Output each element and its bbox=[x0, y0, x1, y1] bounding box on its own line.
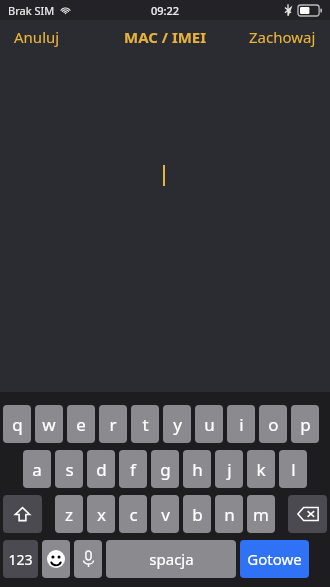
button[interactable]: z bbox=[55, 495, 83, 533]
button[interactable]: g bbox=[151, 450, 179, 488]
button[interactable]: f bbox=[119, 450, 147, 488]
button[interactable]: Anuluj bbox=[10, 24, 64, 50]
staticText: u bbox=[204, 413, 215, 436]
staticText: t bbox=[142, 413, 149, 436]
staticText: d bbox=[96, 458, 107, 481]
button[interactable]: k bbox=[247, 450, 275, 488]
staticText: s bbox=[65, 458, 74, 481]
staticText: e bbox=[76, 413, 86, 436]
staticText: r bbox=[109, 413, 117, 436]
button[interactable]: a bbox=[23, 450, 51, 488]
button[interactable]: i bbox=[227, 405, 255, 443]
button[interactable]: u bbox=[195, 405, 223, 443]
staticText: h bbox=[192, 458, 203, 481]
button[interactable]: Backspace bbox=[288, 495, 327, 533]
button[interactable]: 123 bbox=[3, 540, 38, 578]
button[interactable]: v bbox=[151, 495, 179, 533]
staticText: n bbox=[224, 503, 235, 526]
staticText: i bbox=[239, 413, 244, 436]
button[interactable]: s bbox=[55, 450, 83, 488]
staticText: w bbox=[42, 413, 56, 436]
staticText: Brak SIM bbox=[8, 3, 55, 18]
staticText: Anuluj bbox=[14, 27, 60, 47]
button[interactable]: h bbox=[183, 450, 211, 488]
button[interactable]: spacja bbox=[106, 540, 236, 578]
staticText: z bbox=[65, 503, 73, 526]
button[interactable]: Zachowaj bbox=[245, 24, 320, 50]
staticText: j bbox=[227, 458, 232, 481]
staticText: p bbox=[300, 413, 311, 436]
button[interactable]: e bbox=[67, 405, 95, 443]
button[interactable]: p bbox=[291, 405, 319, 443]
button[interactable]: x bbox=[87, 495, 115, 533]
staticText: v bbox=[161, 503, 170, 526]
button[interactable]: c bbox=[119, 495, 147, 533]
staticText: b bbox=[192, 503, 203, 526]
staticText: x bbox=[97, 503, 106, 526]
staticText: Zachowaj bbox=[249, 27, 316, 47]
staticText: c bbox=[129, 503, 138, 526]
staticText: 123 bbox=[8, 550, 33, 569]
button[interactable]: o bbox=[259, 405, 287, 443]
staticText: MAC / IMEI bbox=[124, 27, 207, 47]
button[interactable]: Shift bbox=[3, 495, 42, 533]
staticText: k bbox=[256, 458, 266, 481]
staticText: q bbox=[12, 413, 23, 436]
button[interactable]: Gotowe bbox=[240, 540, 309, 578]
button[interactable]: Emoji bbox=[42, 540, 70, 578]
button[interactable]: d bbox=[87, 450, 115, 488]
button[interactable]: t bbox=[131, 405, 159, 443]
staticText: spacja bbox=[149, 549, 194, 569]
button[interactable]: Dictate bbox=[74, 540, 102, 578]
staticText: 09:22 bbox=[151, 3, 180, 18]
button[interactable]: l bbox=[279, 450, 307, 488]
staticText: m bbox=[253, 503, 269, 526]
button[interactable]: m bbox=[247, 495, 275, 533]
staticText: l bbox=[291, 458, 296, 481]
button[interactable]: n bbox=[215, 495, 243, 533]
button[interactable]: b bbox=[183, 495, 211, 533]
button[interactable]: y bbox=[163, 405, 191, 443]
staticText: g bbox=[160, 458, 171, 481]
staticText: f bbox=[130, 458, 136, 481]
staticText: a bbox=[32, 458, 42, 481]
button[interactable]: r bbox=[99, 405, 127, 443]
button[interactable]: w bbox=[35, 405, 63, 443]
staticText: Gotowe bbox=[247, 549, 302, 569]
button[interactable]: j bbox=[215, 450, 243, 488]
button[interactable]: q bbox=[3, 405, 31, 443]
staticText: y bbox=[173, 413, 182, 436]
staticText: o bbox=[268, 413, 279, 436]
